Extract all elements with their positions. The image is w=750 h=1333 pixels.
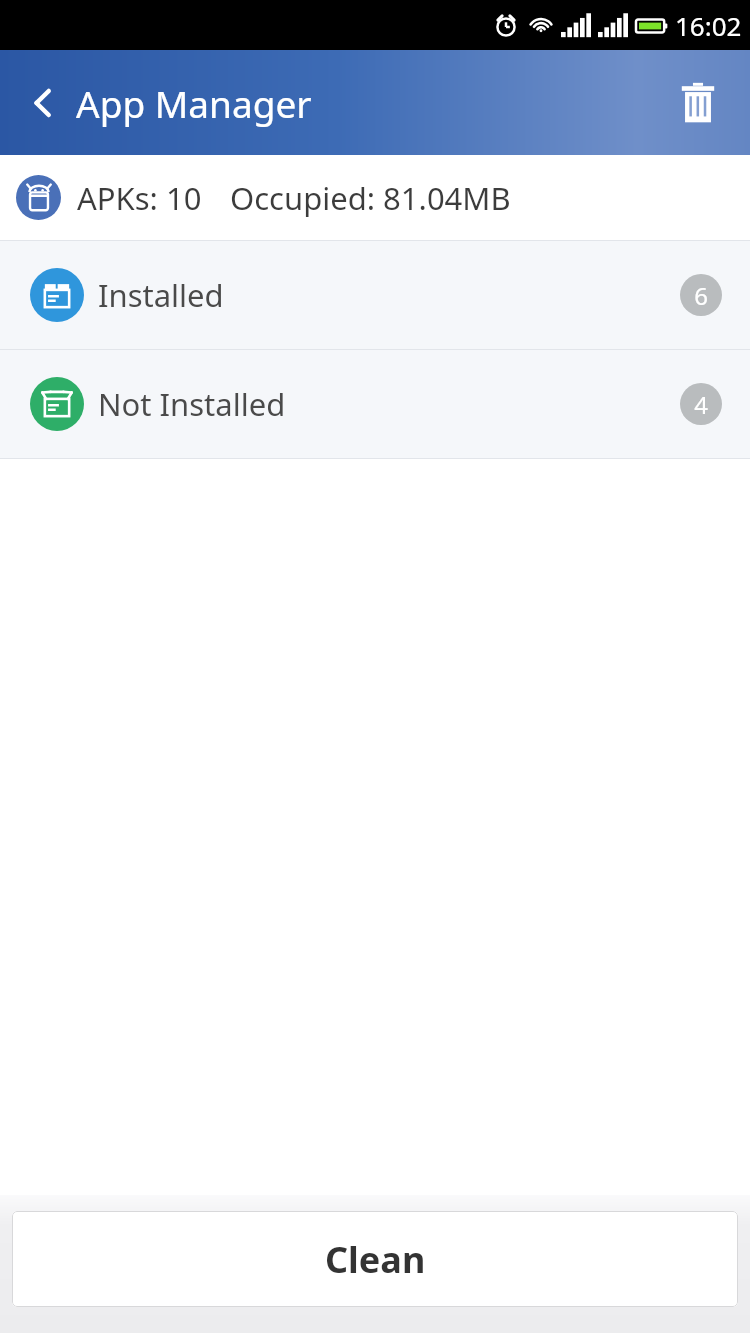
staticText: 16:02	[675, 8, 742, 43]
staticText: Clean	[325, 1235, 426, 1284]
staticText: 6	[694, 279, 708, 312]
button[interactable]: Clean	[12, 1211, 738, 1307]
staticText: Not Installed	[98, 383, 286, 425]
button[interactable]: App Manager	[0, 70, 326, 136]
button[interactable]: Not Installed	[0, 350, 750, 458]
staticText: Installed	[98, 274, 224, 316]
button[interactable]: Delete	[670, 75, 726, 131]
button[interactable]: APKs: 10	[0, 155, 750, 240]
staticText: App Manager	[76, 78, 312, 128]
staticText: Occupied: 81.04MB	[230, 177, 511, 219]
staticText: 4	[694, 388, 708, 421]
button[interactable]: Installed	[0, 241, 750, 349]
staticText: APKs: 10	[77, 177, 202, 219]
